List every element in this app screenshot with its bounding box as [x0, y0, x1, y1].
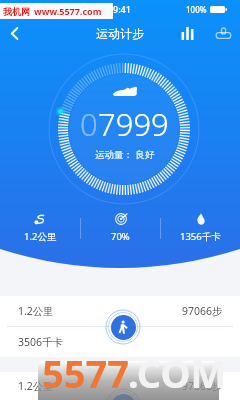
staticText: 3506千卡 — [18, 335, 64, 349]
button[interactable]: Start walking — [111, 394, 136, 400]
button[interactable]: Start walking — [111, 315, 136, 340]
button[interactable]: Statistics — [174, 20, 200, 46]
button[interactable]: 1.2公里 — [0, 372, 240, 400]
button[interactable]: 1.2公里 — [0, 213, 80, 243]
staticText: 7999 — [98, 103, 169, 145]
button[interactable]: 1356千卡 — [161, 213, 240, 243]
staticText: 运动计步 — [96, 26, 144, 41]
staticText: 1.2公里 — [18, 379, 54, 393]
staticText: 1.2公里 — [24, 230, 57, 243]
staticText: 100% — [186, 4, 207, 15]
staticText: 5577 — [42, 347, 129, 399]
button[interactable]: 1.2公里 — [0, 296, 240, 326]
button[interactable]: 3506千卡 — [0, 327, 240, 357]
staticText: 97066步 — [182, 304, 223, 318]
staticText: 70% — [111, 230, 130, 243]
button[interactable]: Sync data — [210, 20, 236, 46]
staticText: 97066步 — [182, 379, 223, 393]
staticText: 我机网 — [3, 6, 30, 17]
staticText: 0 — [80, 103, 98, 145]
staticText: .COM — [128, 347, 227, 399]
staticText: 1.2公里 — [18, 304, 54, 318]
staticText: 运动量： 良好 — [95, 148, 155, 161]
staticText: 1356千卡 — [180, 230, 221, 243]
staticText: 9:41 — [113, 3, 131, 15]
staticText: www.5577.com — [34, 5, 102, 17]
button[interactable]: 70% — [81, 213, 160, 243]
button[interactable]: Back — [0, 19, 28, 47]
